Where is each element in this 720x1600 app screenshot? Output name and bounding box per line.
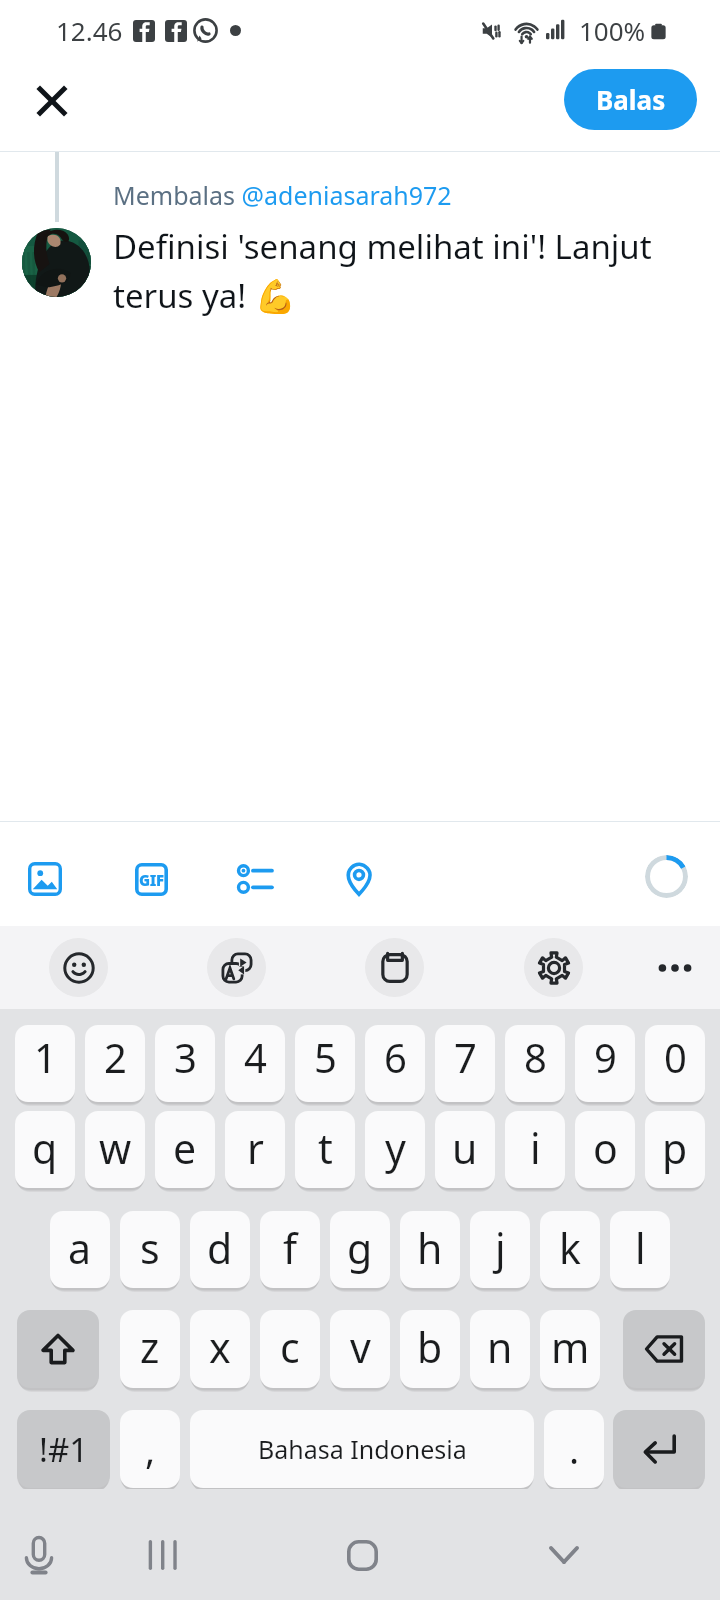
button[interactable]: 2 [85, 1025, 145, 1102]
button[interactable]: x [190, 1310, 250, 1388]
staticText: b [417, 1319, 443, 1375]
staticText: Balas [596, 82, 666, 117]
button[interactable]: g [330, 1211, 390, 1288]
button[interactable]: 7 [435, 1025, 495, 1102]
staticText: 12.46 [56, 13, 123, 48]
button[interactable]: Voice input [1, 1517, 77, 1593]
staticText: v [350, 1319, 371, 1375]
button[interactable]: 1 [15, 1025, 75, 1102]
button[interactable]: z [120, 1310, 180, 1388]
button[interactable]: y [365, 1111, 425, 1188]
button[interactable]: , [120, 1410, 180, 1488]
button[interactable]: h [400, 1211, 460, 1288]
button[interactable]: m [540, 1310, 600, 1388]
button[interactable]: Bahasa Indonesia [190, 1410, 534, 1488]
staticText: Definisi 'senang melihat ini'! Lanjut te… [113, 224, 683, 318]
button[interactable]: 9 [575, 1025, 635, 1102]
staticText: 4 [244, 1030, 267, 1084]
button[interactable]: Close [14, 63, 90, 139]
button[interactable]: Recent apps [123, 1517, 199, 1593]
button[interactable]: 4 [225, 1025, 285, 1102]
staticText: 100% [579, 13, 646, 48]
staticText: j [495, 1220, 506, 1276]
staticText: p [662, 1120, 688, 1176]
button[interactable]: Add GIF [118, 846, 184, 912]
button[interactable]: n [470, 1310, 530, 1388]
staticText: 5 [314, 1030, 337, 1084]
button[interactable]: v [330, 1310, 390, 1388]
staticText: e [173, 1120, 197, 1176]
button[interactable]: o [575, 1111, 635, 1188]
button[interactable]: 3 [155, 1025, 215, 1102]
button[interactable]: t [295, 1111, 355, 1188]
staticText: 2 [104, 1030, 127, 1084]
staticText: n [487, 1319, 513, 1375]
staticText: x [209, 1319, 231, 1375]
staticText: 3 [174, 1030, 197, 1084]
button[interactable]: Add photo [12, 846, 78, 912]
button[interactable]: Enter [613, 1410, 705, 1488]
button[interactable]: l [610, 1211, 670, 1288]
button[interactable]: More options [645, 938, 704, 997]
staticText: , [145, 1423, 156, 1475]
button[interactable]: Reply text field [0, 152, 720, 821]
staticText: c [280, 1319, 300, 1375]
button[interactable]: q [15, 1111, 75, 1188]
staticText: Bahasa Indonesia [258, 1432, 467, 1466]
staticText: k [559, 1220, 581, 1276]
button[interactable]: j [470, 1211, 530, 1288]
button[interactable]: 5 [295, 1025, 355, 1102]
button[interactable]: Hide keyboard [526, 1517, 602, 1593]
staticText: a [68, 1220, 92, 1276]
button[interactable]: Shift [17, 1310, 99, 1388]
staticText: t [318, 1120, 333, 1176]
button[interactable]: 0 [645, 1025, 705, 1102]
staticText: 0 [664, 1030, 687, 1084]
staticText: o [593, 1120, 618, 1176]
button[interactable]: Balas [564, 69, 697, 130]
staticText: 1 [34, 1030, 57, 1084]
button[interactable]: k [540, 1211, 600, 1288]
button[interactable]: Translate [207, 938, 266, 997]
button[interactable]: f [260, 1211, 320, 1288]
staticText: GIF [139, 870, 164, 890]
button[interactable]: Character count [645, 855, 688, 898]
button[interactable]: Add poll [223, 846, 289, 912]
button[interactable]: !#1 [17, 1410, 110, 1488]
button[interactable]: w [85, 1111, 145, 1188]
button[interactable]: a [50, 1211, 110, 1288]
staticText: . [569, 1423, 580, 1475]
staticText: !#1 [39, 1427, 89, 1472]
button[interactable]: e [155, 1111, 215, 1188]
button[interactable]: s [120, 1211, 180, 1288]
button[interactable]: u [435, 1111, 495, 1188]
staticText: u [452, 1120, 478, 1176]
button[interactable]: Add location [326, 846, 392, 912]
staticText: m [551, 1319, 590, 1375]
button[interactable]: Emoji [49, 938, 108, 997]
button[interactable]: Clipboard [365, 938, 424, 997]
staticText: d [207, 1220, 233, 1276]
button[interactable]: b [400, 1310, 460, 1388]
button[interactable]: p [645, 1111, 705, 1188]
staticText: 9 [594, 1030, 617, 1084]
staticText: w [99, 1120, 132, 1176]
button[interactable]: Keyboard settings [524, 938, 583, 997]
staticText: 7 [454, 1030, 477, 1084]
button[interactable]: 6 [365, 1025, 425, 1102]
button[interactable]: . [544, 1410, 604, 1488]
staticText: y [385, 1120, 406, 1176]
staticText: f [283, 1220, 298, 1276]
button[interactable]: 8 [505, 1025, 565, 1102]
button[interactable]: r [225, 1111, 285, 1188]
button[interactable]: Home [324, 1517, 400, 1593]
button[interactable]: c [260, 1310, 320, 1388]
staticText: Membalas @adeniasarah972 [113, 178, 452, 212]
button[interactable]: Backspace [623, 1310, 705, 1388]
staticText: h [417, 1220, 443, 1276]
staticText: z [140, 1319, 160, 1375]
staticText: q [32, 1120, 58, 1176]
button[interactable]: i [505, 1111, 565, 1188]
staticText: g [347, 1220, 373, 1276]
button[interactable]: d [190, 1211, 250, 1288]
